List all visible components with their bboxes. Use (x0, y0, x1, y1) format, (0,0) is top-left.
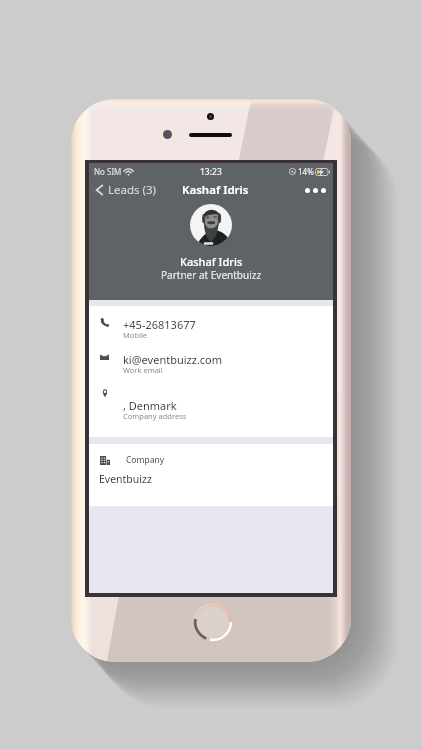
staticText: 13:23 (200, 166, 222, 178)
staticText: ki@eventbuizz.com (123, 352, 223, 367)
staticText: Work email (123, 365, 163, 375)
staticText: Partner at Eventbuizz (161, 268, 262, 282)
staticText: No SIM (94, 166, 122, 177)
staticText: Leads (3) (108, 182, 157, 198)
button[interactable]: Leads (3) (89, 182, 159, 198)
button[interactable]: More options (298, 184, 333, 197)
staticText: Kashaf Idris (180, 254, 243, 269)
button[interactable]: , Denmark (89, 377, 333, 423)
staticText: 14% (298, 166, 314, 177)
button[interactable]: ki@eventbuizz.com (89, 342, 333, 377)
button[interactable]: Company (89, 444, 333, 506)
button[interactable]: Home (194, 603, 232, 641)
staticText: Company (126, 454, 165, 466)
staticText: +45-26813677 (123, 317, 196, 332)
staticText: Kashaf Idris (182, 182, 249, 198)
staticText: Eventbuizz (99, 472, 152, 486)
staticText: Company address (123, 411, 187, 421)
staticText: , Denmark (123, 398, 177, 413)
staticText: Mobile (123, 330, 148, 340)
button[interactable]: +45-26813677 (89, 306, 333, 342)
